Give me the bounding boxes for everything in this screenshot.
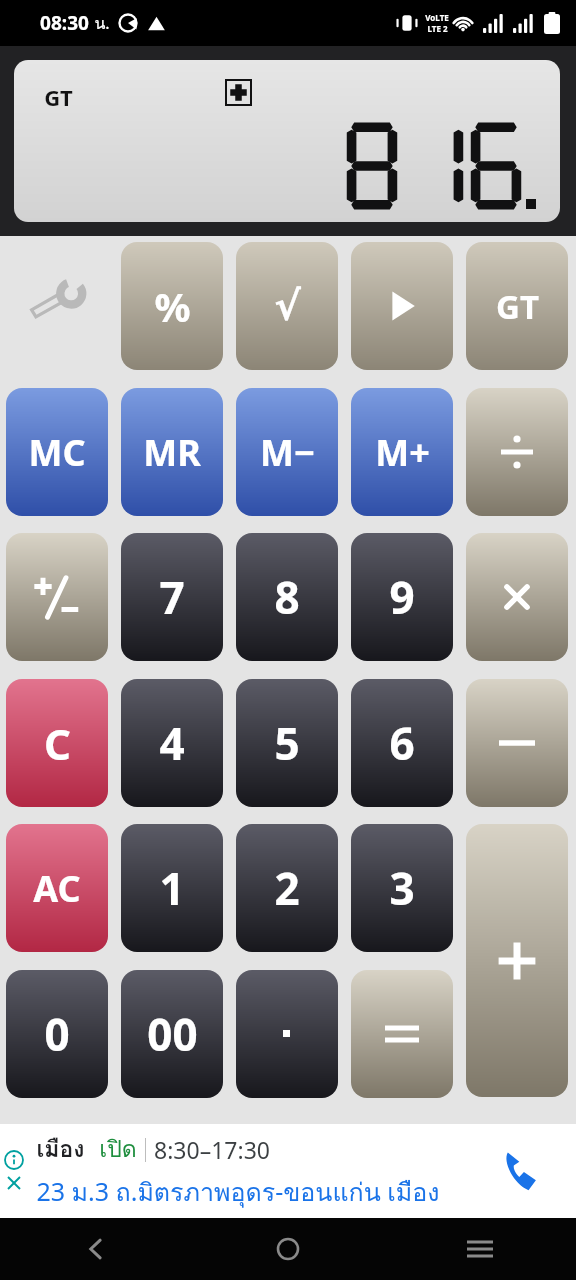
button[interactable]: Settings <box>6 236 108 366</box>
button[interactable]: M− <box>236 388 338 516</box>
staticText: 4 <box>159 713 185 773</box>
button[interactable]: × <box>466 533 568 661</box>
button[interactable]: ▶ <box>351 242 453 370</box>
staticText: น. <box>94 11 110 36</box>
button[interactable]: 1 <box>121 824 223 952</box>
staticText: 6 <box>389 713 415 773</box>
staticText: AC <box>33 864 81 913</box>
button[interactable]: AC <box>6 824 108 952</box>
button[interactable]: 9 <box>351 533 453 661</box>
staticText: 00 <box>147 1004 198 1064</box>
staticText: 7 <box>159 567 185 627</box>
staticText: √ <box>274 283 301 330</box>
button[interactable]: Call <box>496 1144 550 1198</box>
button[interactable]: 6 <box>351 679 453 807</box>
button[interactable]: % <box>121 242 223 370</box>
staticText: C <box>44 715 71 772</box>
staticText: 08:30 <box>40 10 89 36</box>
staticText: 1 <box>159 858 185 918</box>
button[interactable]: 00 <box>121 970 223 1098</box>
button[interactable]: MC <box>6 388 108 516</box>
button[interactable]: 7 <box>121 533 223 661</box>
button[interactable]: 8 <box>236 533 338 661</box>
button[interactable]: = <box>351 970 453 1098</box>
button[interactable]: . <box>236 970 338 1098</box>
button[interactable]: Home <box>192 1218 384 1280</box>
button[interactable]: GT <box>466 242 568 370</box>
staticText: GT <box>496 284 539 329</box>
button[interactable]: 4 <box>121 679 223 807</box>
staticText: M+ <box>375 428 430 477</box>
staticText: 2 <box>274 858 300 918</box>
button[interactable]: M+ <box>351 388 453 516</box>
button[interactable]: √ <box>236 242 338 370</box>
button[interactable]: 0 <box>6 970 108 1098</box>
button[interactable]: C <box>6 679 108 807</box>
staticText: เปิด <box>99 1131 137 1168</box>
staticText: เมือง <box>36 1131 85 1168</box>
button[interactable]: 3 <box>351 824 453 952</box>
staticText: 8 <box>274 567 300 627</box>
button[interactable]: 5 <box>236 679 338 807</box>
button[interactable]: Back <box>0 1218 192 1280</box>
staticText: 9 <box>389 567 415 627</box>
staticText: M− <box>260 428 315 477</box>
button[interactable]: + <box>466 824 568 1097</box>
staticText: 0 <box>44 1004 70 1064</box>
staticText: 5 <box>274 713 300 773</box>
button[interactable]: 2 <box>236 824 338 952</box>
staticText: MR <box>143 428 201 477</box>
staticText: GT <box>44 82 73 112</box>
staticText: 3 <box>389 858 415 918</box>
button[interactable]: ÷ <box>466 388 568 516</box>
button[interactable]: MR <box>121 388 223 516</box>
button[interactable]: − <box>466 679 568 807</box>
staticText: 23 ม.3 ถ.มิตรภาพอุดร-ขอนแก่น เมือง <box>36 1172 440 1212</box>
staticText: MC <box>28 428 86 477</box>
staticText: VoLTE <box>425 12 449 23</box>
staticText: 8:30–17:30 <box>154 1134 270 1165</box>
staticText: % <box>154 279 191 333</box>
other: Ad info <box>4 1150 24 1170</box>
button[interactable]: +/− <box>6 533 108 661</box>
button[interactable]: Recents <box>384 1218 576 1280</box>
staticText: LTE 2 <box>427 23 448 34</box>
other: Close ad <box>4 1173 24 1193</box>
